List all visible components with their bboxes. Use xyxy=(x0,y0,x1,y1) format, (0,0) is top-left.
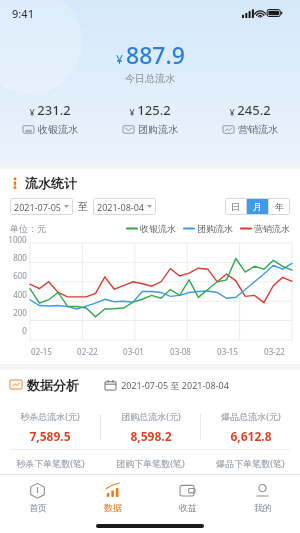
button[interactable]: ¥ xyxy=(100,99,200,138)
staticText: 月 xyxy=(253,201,262,212)
button[interactable]: 首页 xyxy=(0,475,75,519)
staticText: 团购流水 xyxy=(197,223,233,234)
button[interactable]: 秒杀总流水(元) xyxy=(0,405,100,449)
staticText: 营销流水 xyxy=(254,223,290,234)
staticText: 营销流水 xyxy=(238,123,278,136)
staticText: 至 xyxy=(78,200,88,213)
staticText: 收银流水 xyxy=(38,123,78,136)
staticText: 我的 xyxy=(254,502,272,513)
staticText: 今日总流水 xyxy=(125,72,175,85)
staticText: 流水统计 xyxy=(25,175,77,191)
staticText: 数据 xyxy=(104,502,122,513)
staticText: 爆品下单笔数(笔) xyxy=(216,457,285,469)
staticText: 2021-07-05 xyxy=(14,201,61,213)
staticText: ¥ xyxy=(29,106,35,118)
staticText: 03-01 xyxy=(123,346,144,357)
staticText: 收益 xyxy=(179,502,197,513)
button[interactable]: 2021-07-05 xyxy=(10,198,73,215)
staticText: 400 xyxy=(13,289,27,300)
staticText: 231.2 xyxy=(37,101,71,119)
staticText: 03-08 xyxy=(170,346,191,357)
staticText: 首页 xyxy=(29,502,47,513)
staticText: 125.2 xyxy=(137,101,171,119)
staticText: 600 xyxy=(13,270,27,281)
staticText: 单位：元 xyxy=(10,223,46,234)
staticText: 03-15 xyxy=(217,346,238,357)
staticText: 年 xyxy=(275,201,284,212)
staticText: 团购流水 xyxy=(138,123,178,136)
staticText: 秒杀下单笔数(笔) xyxy=(16,457,85,469)
button[interactable]: ¥ xyxy=(200,99,300,138)
staticText: 团购总流水(元) xyxy=(121,410,181,422)
staticText: 6,612.8 xyxy=(230,428,272,444)
staticText: 秒杀总流水(元) xyxy=(20,410,80,422)
staticText: 2021-08-04 xyxy=(97,201,144,213)
staticText: 02-15 xyxy=(31,346,52,357)
staticText: 1000 xyxy=(8,234,27,245)
staticText: 9:41 xyxy=(12,6,34,21)
staticText: 2021-07-05 至 2021-08-04 xyxy=(121,379,229,391)
button[interactable]: 爆品总流水(元) xyxy=(201,405,300,449)
button[interactable]: 月 xyxy=(247,198,268,215)
staticText: ¥ xyxy=(129,106,135,118)
button[interactable]: ¥ xyxy=(0,99,100,138)
staticText: 0 xyxy=(22,325,27,336)
button[interactable]: 数据 xyxy=(75,475,150,519)
staticText: ¥ xyxy=(229,106,235,118)
button[interactable]: 2021-08-04 xyxy=(93,198,156,215)
button[interactable]: 收益 xyxy=(150,475,225,519)
staticText: 数据分析 xyxy=(27,377,79,393)
button[interactable]: 团购总流水(元) xyxy=(101,405,200,449)
button[interactable]: 日 xyxy=(225,198,246,215)
staticText: 7,589.5 xyxy=(29,428,71,444)
staticText: 887.9 xyxy=(126,39,185,70)
staticText: 02-22 xyxy=(77,346,98,357)
staticText: 200 xyxy=(13,307,27,318)
button[interactable]: 我的 xyxy=(225,475,300,519)
staticText: 800 xyxy=(13,252,27,263)
staticText: ¥ xyxy=(116,51,123,67)
staticText: 03-22 xyxy=(264,346,285,357)
staticText: 日 xyxy=(231,201,240,212)
staticText: 爆品总流水(元) xyxy=(221,410,281,422)
staticText: 团购下单笔数(笔) xyxy=(116,457,185,469)
staticText: 245.2 xyxy=(237,101,271,119)
button[interactable]: 年 xyxy=(269,198,290,215)
staticText: 8,598.2 xyxy=(130,428,172,444)
button[interactable]: 2021-07-05 至 2021-08-04 xyxy=(105,379,229,391)
staticText: 收银流水 xyxy=(140,223,176,234)
